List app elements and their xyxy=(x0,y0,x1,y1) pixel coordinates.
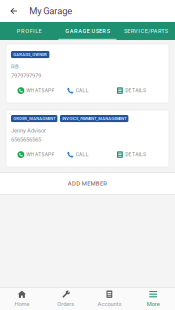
staticText: CALL xyxy=(76,88,89,93)
button[interactable]: More xyxy=(131,287,175,310)
staticText: GARAGE USERS xyxy=(65,28,110,34)
button[interactable]: Home xyxy=(0,287,44,310)
staticText: INVOICE_PAYMENT_MANAGEMENT xyxy=(62,116,126,121)
staticText: Accounts xyxy=(97,301,121,307)
staticText: ADD MEMBER xyxy=(68,180,107,187)
button[interactable]: WHATSAPP xyxy=(17,87,54,94)
staticText: ORDER_MANAGMENT xyxy=(13,116,55,121)
staticText: SERVICE/PARTS xyxy=(124,28,168,34)
button[interactable]: ADD MEMBER xyxy=(0,172,175,195)
button[interactable]: Orders xyxy=(44,287,88,310)
staticText: Orders xyxy=(57,301,74,307)
button[interactable]: CALL xyxy=(67,87,89,94)
staticText: RB xyxy=(11,63,19,70)
button[interactable]: PROFILE xyxy=(0,22,58,40)
staticText: More xyxy=(147,301,160,307)
staticText: DETAILS xyxy=(125,88,146,93)
button[interactable]: SERVICE/PARTS xyxy=(117,22,175,40)
button[interactable]: Back xyxy=(0,2,29,20)
staticText: 6565656565 xyxy=(11,136,41,143)
staticText: Home xyxy=(14,301,29,307)
staticText: 7979797979 xyxy=(11,72,41,79)
staticText: PROFILE xyxy=(17,28,42,34)
button[interactable]: CALL xyxy=(67,151,89,158)
button[interactable]: Accounts xyxy=(87,287,131,310)
button[interactable]: GARAGE USERS xyxy=(58,22,117,40)
button[interactable]: DETAILS xyxy=(116,151,146,158)
staticText: DETAILS xyxy=(125,152,146,157)
staticText: Jenny Advisor xyxy=(11,127,46,134)
staticText: WHATSAPP xyxy=(26,88,54,93)
staticText: WHATSAPP xyxy=(26,152,54,157)
staticText: My Garage xyxy=(29,5,72,16)
staticText: GARAGE_OWNER xyxy=(13,52,47,57)
button[interactable]: WHATSAPP xyxy=(17,151,54,158)
staticText: CALL xyxy=(76,152,89,157)
button[interactable]: DETAILS xyxy=(116,87,146,94)
